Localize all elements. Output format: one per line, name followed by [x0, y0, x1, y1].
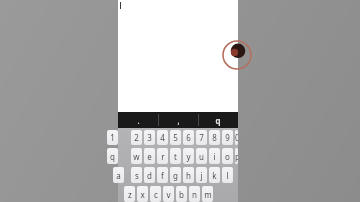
button[interactable]: 9: [222, 130, 233, 145]
staticText: f: [161, 170, 164, 181]
button[interactable]: 2: [131, 130, 142, 145]
staticText: q: [215, 115, 221, 126]
button[interactable]: u: [196, 148, 207, 164]
button[interactable]: p: [235, 148, 238, 164]
button[interactable]: o: [222, 148, 233, 164]
button[interactable]: r: [157, 148, 168, 164]
button[interactable]: j: [196, 167, 207, 183]
button[interactable]: m: [202, 186, 213, 202]
button[interactable]: t: [170, 148, 181, 164]
staticText: 9: [225, 132, 230, 143]
button[interactable]: f: [157, 167, 168, 183]
button[interactable]: .: [118, 112, 158, 128]
button[interactable]: k: [209, 167, 220, 183]
staticText: k: [212, 170, 217, 181]
button[interactable]: n: [189, 186, 200, 202]
staticText: 3: [147, 132, 152, 143]
staticText: s: [135, 170, 139, 181]
button[interactable]: q: [107, 148, 118, 164]
staticText: 5: [173, 132, 178, 143]
staticText: i: [213, 151, 216, 162]
button[interactable]: w: [131, 148, 142, 164]
staticText: a: [116, 170, 121, 181]
staticText: n: [192, 189, 197, 200]
button[interactable]: e: [144, 148, 155, 164]
staticText: 0: [235, 132, 238, 143]
staticText: j: [200, 170, 203, 181]
staticText: q: [110, 151, 115, 162]
staticText: v: [166, 189, 171, 200]
staticText: 8: [212, 132, 217, 143]
staticText: 6: [186, 132, 191, 143]
staticText: m: [204, 189, 212, 200]
button[interactable]: i: [209, 148, 220, 164]
button[interactable]: c: [150, 186, 161, 202]
button[interactable]: s: [131, 167, 142, 183]
button[interactable]: Profile: [224, 41, 238, 69]
staticText: l: [226, 170, 229, 181]
staticText: 1: [110, 132, 115, 143]
button[interactable]: x: [137, 186, 148, 202]
button[interactable]: 8: [209, 130, 220, 145]
staticText: c: [154, 189, 158, 200]
button[interactable]: g: [170, 167, 181, 183]
button[interactable]: a: [113, 167, 124, 183]
staticText: x: [140, 189, 145, 200]
staticText: d: [147, 170, 152, 181]
staticText: r: [161, 151, 165, 162]
button[interactable]: y: [183, 148, 194, 164]
staticText: p: [235, 151, 238, 162]
staticText: 7: [199, 132, 204, 143]
button[interactable]: Profile: [118, 0, 238, 112]
button[interactable]: b: [176, 186, 187, 202]
staticText: w: [133, 151, 140, 162]
button[interactable]: h: [183, 167, 194, 183]
button[interactable]: 7: [196, 130, 207, 145]
button[interactable]: 4: [157, 130, 168, 145]
button[interactable]: d: [144, 167, 155, 183]
button[interactable]: z: [124, 186, 135, 202]
staticText: y: [186, 151, 191, 162]
button[interactable]: l: [222, 167, 233, 183]
button[interactable]: 3: [144, 130, 155, 145]
staticText: h: [186, 170, 191, 181]
staticText: b: [179, 189, 184, 200]
staticText: g: [173, 170, 178, 181]
button[interactable]: ,: [158, 112, 198, 128]
staticText: e: [147, 151, 152, 162]
staticText: 2: [134, 132, 139, 143]
button[interactable]: 0: [235, 130, 238, 145]
button[interactable]: 5: [170, 130, 181, 145]
staticText: t: [174, 151, 177, 162]
staticText: 4: [160, 132, 165, 143]
staticText: .: [137, 115, 140, 126]
button[interactable]: 1: [107, 130, 118, 145]
staticText: ,: [177, 115, 180, 126]
staticText: u: [199, 151, 204, 162]
button[interactable]: v: [163, 186, 174, 202]
staticText: z: [128, 189, 132, 200]
button[interactable]: q: [198, 112, 238, 128]
button[interactable]: 6: [183, 130, 194, 145]
staticText: o: [225, 151, 230, 162]
